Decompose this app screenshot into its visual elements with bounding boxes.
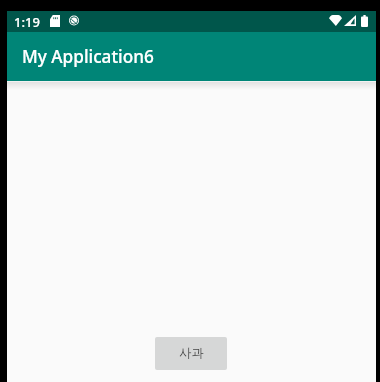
staticText: My Application6 bbox=[22, 45, 154, 68]
other: Battery bbox=[361, 15, 368, 27]
other: Do not disturb bbox=[69, 15, 79, 26]
staticText: 사과 bbox=[179, 345, 204, 360]
button[interactable]: 사과 bbox=[155, 337, 227, 370]
staticText: 1:19 bbox=[14, 13, 40, 31]
other: Mobile signal bbox=[344, 15, 356, 26]
other: SD card bbox=[50, 15, 60, 27]
other: Wi-Fi bbox=[329, 15, 342, 26]
